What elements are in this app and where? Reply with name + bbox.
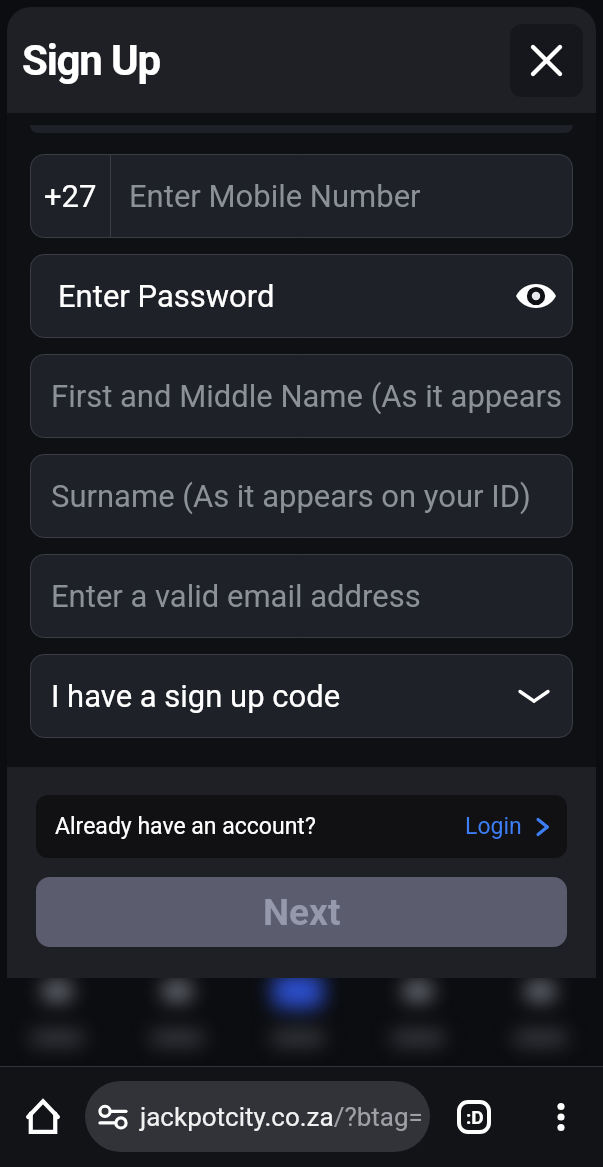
staticText: +27 (44, 178, 97, 214)
button[interactable]: I have a sign up code (30, 654, 573, 738)
staticText: I have a sign up code (51, 678, 341, 714)
staticText: Enter a valid email address (51, 578, 421, 614)
staticText: Already have an account? (55, 813, 316, 840)
button[interactable]: More options (518, 1066, 603, 1167)
button[interactable]: Tabs (430, 1066, 518, 1167)
button[interactable]: Already have an account? (36, 795, 567, 858)
button[interactable]: Next (36, 877, 567, 947)
staticText: Enter Password (58, 278, 275, 314)
staticText: Next (263, 891, 341, 934)
button[interactable]: Show password (511, 271, 561, 321)
button[interactable]: Enter a valid email address (30, 554, 573, 638)
button[interactable]: jackpotcity.co.za/?btag= (85, 1081, 430, 1152)
staticText: First and Middle Name (As it appears (51, 378, 563, 414)
staticText: :D (466, 1106, 484, 1128)
staticText: Sign Up (22, 36, 160, 85)
staticText: Enter Mobile Number (129, 178, 421, 214)
button[interactable]: +27 (30, 154, 573, 238)
staticText: jackpotcity.co.za/?btag= (140, 1102, 423, 1132)
button[interactable]: Close (510, 24, 583, 97)
button[interactable]: Surname (As it appears on your ID) (30, 454, 573, 538)
button[interactable]: Enter Password (30, 254, 573, 338)
staticText: Login (465, 813, 522, 840)
staticText: Surname (As it appears on your ID) (51, 478, 531, 514)
button[interactable]: Home (0, 1066, 85, 1167)
button[interactable]: First and Middle Name (As it appears (30, 354, 573, 438)
